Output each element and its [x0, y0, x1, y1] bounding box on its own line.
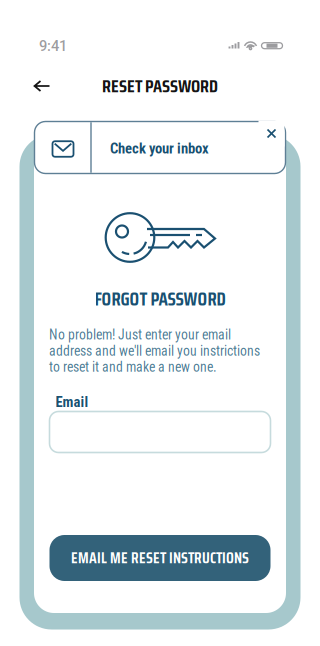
staticText: 9:41	[39, 37, 67, 55]
button[interactable]: Dismiss	[258, 120, 284, 146]
staticText: EMAIL ME RESET INSTRUCTIONS	[71, 546, 249, 570]
staticText: Check your inbox	[110, 140, 209, 157]
button[interactable]: Back	[22, 68, 62, 104]
button[interactable]: EMAIL ME RESET INSTRUCTIONS	[49, 535, 270, 581]
staticText: Email	[55, 393, 88, 411]
staticText: RESET PASSWORD	[102, 72, 218, 100]
staticText: No problem! Just enter your email addres…	[49, 327, 260, 375]
staticText: FORGOT PASSWORD	[94, 284, 225, 314]
